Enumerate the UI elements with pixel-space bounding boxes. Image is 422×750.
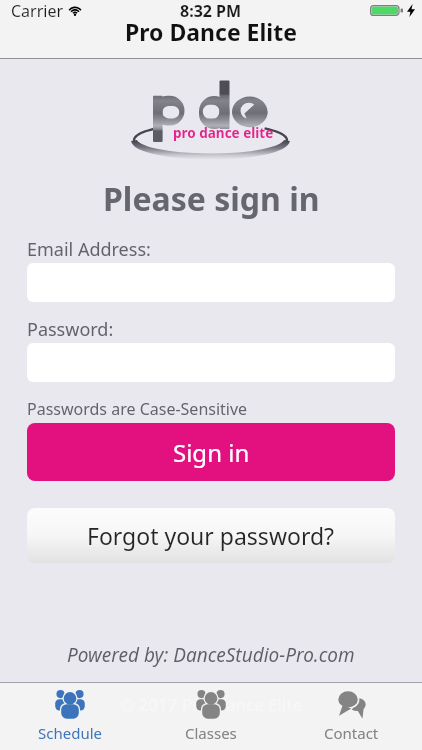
staticText: Powered by: DanceStudio-Pro.com [67, 642, 355, 668]
staticText: Pro Dance Elite [125, 16, 297, 47]
button[interactable]: Schedule [0, 688, 140, 743]
button[interactable]: Classes [140, 688, 281, 743]
button[interactable]: Contact [281, 688, 422, 743]
staticText: © 2017 Pro Dance Elite [120, 693, 303, 716]
staticText: Sign in [173, 436, 250, 469]
staticText: Passwords are Case-Sensitive [27, 398, 248, 420]
staticText: Please sign in [103, 177, 320, 221]
staticText: 8:32 PM [180, 0, 242, 20]
staticText: pro dance elite [173, 124, 274, 142]
staticText: Carrier [11, 0, 64, 20]
staticText: Contact [324, 723, 379, 743]
staticText: Schedule [38, 723, 102, 743]
staticText: Forgot your password? [87, 520, 335, 551]
staticText: Email Address: [27, 237, 151, 262]
button[interactable]: Forgot your password? [27, 508, 395, 563]
staticText: Classes [185, 723, 237, 743]
button[interactable]: Sign in [27, 423, 395, 481]
staticText: Password: [27, 317, 114, 342]
